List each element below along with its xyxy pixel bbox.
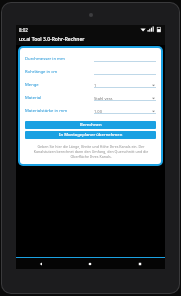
button[interactable]: In Montageplaner übernehmen [25, 131, 156, 139]
button[interactable]: Durchmesser in mm [25, 53, 156, 62]
staticText: Geben Sie hier die Länge, Breite und Höh… [30, 144, 152, 159]
staticText: In Montageplaner übernehmen [59, 132, 123, 138]
button[interactable]: Menge [25, 79, 156, 88]
staticText: Menge [25, 82, 39, 88]
button[interactable]: Berechnen [25, 121, 156, 129]
staticText: Durchmesser in mm [25, 56, 65, 62]
staticText: 8:02 [19, 27, 28, 33]
staticText: Material [25, 95, 42, 101]
staticText: Rohrlänge in cm [25, 69, 58, 75]
button[interactable]: Home [65, 258, 115, 269]
button[interactable]: Material [25, 92, 156, 101]
button[interactable]: Rohrlänge in cm [25, 66, 156, 75]
button[interactable]: Recents [115, 258, 165, 269]
staticText: 1 [94, 83, 97, 88]
staticText: Materialstärke in mm [25, 108, 68, 114]
staticText: 1.00 [94, 109, 102, 114]
staticText: ux.ai Tool 3.0-Rohr-Rechner [19, 36, 85, 43]
button[interactable]: Back [16, 258, 65, 269]
staticText: Berechnen [80, 122, 102, 128]
button[interactable]: Materialstärke in mm [25, 105, 156, 114]
staticText: Stahl verz. [94, 96, 114, 101]
